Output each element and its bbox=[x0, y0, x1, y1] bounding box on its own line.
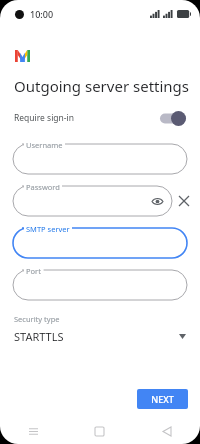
staticText: Port bbox=[26, 266, 41, 276]
button[interactable]: SMTP server bbox=[13, 228, 187, 258]
button[interactable]: Security type bbox=[0, 314, 200, 344]
button[interactable]: Require sign-in bbox=[0, 105, 200, 131]
staticText: SMTP server bbox=[26, 224, 70, 234]
button[interactable]: Home bbox=[66, 419, 133, 444]
staticText: Security type bbox=[14, 314, 60, 324]
button[interactable]: Back bbox=[133, 419, 200, 444]
staticText: Username bbox=[26, 140, 63, 150]
staticText: Require sign-in bbox=[14, 112, 75, 124]
staticText: STARTTLS bbox=[14, 329, 64, 344]
staticText: Password bbox=[26, 182, 60, 192]
button[interactable]: Password bbox=[13, 186, 172, 216]
button[interactable]: Require sign-in toggle bbox=[160, 111, 186, 126]
other: Open security type dropdown bbox=[179, 334, 186, 339]
button[interactable]: Username bbox=[13, 144, 187, 174]
button[interactable]: Port bbox=[13, 270, 187, 300]
staticText: Outgoing server settings bbox=[14, 76, 190, 96]
button[interactable]: Recents bbox=[0, 419, 66, 444]
button[interactable]: NEXT bbox=[137, 389, 188, 409]
staticText: 10:00 bbox=[30, 8, 54, 20]
button[interactable]: Show password bbox=[150, 194, 164, 208]
button[interactable]: Clear password bbox=[175, 192, 193, 210]
staticText: NEXT bbox=[151, 393, 174, 405]
